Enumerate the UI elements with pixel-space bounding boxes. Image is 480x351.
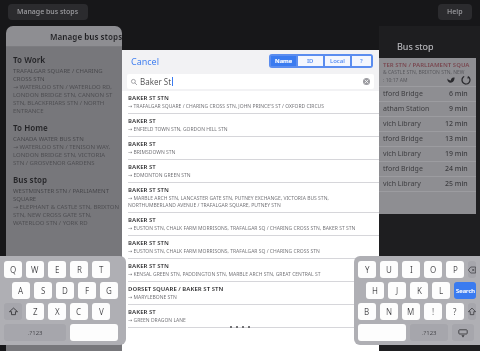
staticText: DORSET SQUARE / BAKER ST STN [128, 285, 224, 293]
button[interactable]: ? [446, 303, 464, 320]
button[interactable]: Baker St [127, 74, 374, 89]
button[interactable]: X [48, 303, 66, 320]
staticText: T [99, 264, 104, 275]
staticText: 12 min [445, 119, 468, 129]
staticText: TER STN / PARLIAMENT SQUA [383, 61, 470, 69]
button[interactable]: Q [4, 261, 22, 278]
button[interactable]: S [34, 282, 52, 299]
button[interactable]: U [380, 261, 398, 278]
button[interactable]: BAKER ST [122, 305, 379, 327]
button[interactable]: Clear text [363, 78, 370, 85]
button[interactable]: H [366, 282, 384, 299]
button[interactable]: V [92, 303, 110, 320]
staticText: BAKER ST STN [128, 262, 169, 270]
button[interactable]: ID [298, 56, 323, 66]
button[interactable]: tford Bridge [379, 132, 476, 146]
staticText: To Home [13, 122, 48, 133]
button[interactable]: Name [271, 56, 296, 66]
button[interactable]: BAKER ST [122, 213, 379, 235]
button[interactable]: .?123 [410, 324, 448, 341]
staticText: → TRAFALGAR SQUARE / CHARING CROSS STN, … [128, 103, 324, 110]
button[interactable]: vich Library [379, 117, 476, 131]
staticText: 19 min [445, 149, 468, 159]
button[interactable]: A [12, 282, 30, 299]
button[interactable]: P [446, 261, 464, 278]
button[interactable]: J [388, 282, 406, 299]
button[interactable]: tford Bridge [379, 87, 476, 101]
button[interactable]: Search [454, 282, 476, 299]
button[interactable]: Space [70, 324, 118, 341]
button[interactable]: Backspace [468, 261, 476, 278]
staticText: X [55, 306, 60, 317]
button[interactable]: .?123 [4, 324, 66, 341]
button[interactable]: Shift [4, 303, 22, 320]
staticText: Name [275, 57, 293, 65]
staticText: → EUSTON STN, CHALK FARM MORRISONS, TRAF… [128, 225, 356, 232]
button[interactable]: W [26, 261, 44, 278]
button[interactable]: BAKER ST [122, 137, 379, 159]
button[interactable]: L [432, 282, 450, 299]
staticText: Search [456, 287, 475, 295]
button[interactable]: ? [352, 56, 371, 66]
button[interactable]: tford Bridge [379, 162, 476, 176]
button[interactable]: M [402, 303, 420, 320]
button[interactable]: Space [358, 324, 406, 341]
staticText: I [410, 264, 413, 275]
button[interactable]: B [358, 303, 376, 320]
staticText: F [85, 285, 90, 296]
staticText: BAKER ST STN [128, 94, 169, 102]
staticText: P [453, 264, 458, 275]
button[interactable]: R [70, 261, 88, 278]
staticText: → WATERLOO STN / WATERLOO RD, LONDON BRI… [13, 83, 120, 115]
button[interactable]: Y [358, 261, 376, 278]
button[interactable]: BAKER ST STN [122, 91, 379, 113]
staticText: ! [432, 306, 435, 317]
button[interactable]: Manage bus stops [8, 4, 88, 20]
button[interactable]: T [92, 261, 110, 278]
staticText: ID [307, 57, 314, 65]
button[interactable]: Shift [468, 303, 476, 320]
button[interactable]: ! [424, 303, 442, 320]
staticText: BAKER ST STN [128, 239, 169, 247]
staticText: Q [10, 264, 17, 275]
button[interactable]: Help [438, 4, 472, 20]
staticText: → BRIMSDOWN STN [128, 149, 176, 156]
button[interactable]: Local [325, 56, 350, 66]
button[interactable]: D [56, 282, 74, 299]
button[interactable]: BAKER ST [122, 114, 379, 136]
button[interactable]: BAKER ST [122, 160, 379, 182]
staticText: → ELEPHANT & CASTLE STN, BRIXTON STN, NE… [13, 203, 120, 227]
button[interactable]: F [78, 282, 96, 299]
staticText: Local [330, 57, 345, 65]
staticText: To Work [13, 54, 46, 65]
staticText: B [364, 306, 370, 317]
button[interactable]: C [70, 303, 88, 320]
staticText: Bus stop [13, 174, 48, 185]
staticText: ? [453, 306, 457, 317]
button[interactable]: O [424, 261, 442, 278]
staticText: vich Library [383, 149, 421, 159]
button[interactable]: Cancel [128, 52, 163, 70]
staticText: tford Bridge [383, 134, 423, 144]
button[interactable]: K [410, 282, 428, 299]
button[interactable]: I [402, 261, 420, 278]
button[interactable]: BAKER ST STN [122, 236, 379, 258]
staticText: S [41, 285, 46, 296]
button[interactable]: N [380, 303, 398, 320]
staticText: 25 min [445, 179, 468, 189]
button[interactable]: BAKER ST STN [122, 259, 379, 281]
staticText: W [31, 264, 39, 275]
button[interactable]: Hide keyboard [452, 324, 474, 341]
button[interactable]: Z [26, 303, 44, 320]
button[interactable]: vich Library [379, 147, 476, 161]
staticText: BAKER ST [128, 163, 156, 171]
button[interactable]: DORSET SQUARE / BAKER ST STN [122, 282, 379, 304]
button[interactable]: atham Station [379, 102, 476, 116]
staticText: ? [360, 57, 363, 65]
button[interactable]: E [48, 261, 66, 278]
button[interactable]: BAKER ST STN [122, 183, 379, 212]
staticText: 9 min [449, 104, 468, 114]
staticText: 13 min [445, 134, 468, 144]
button[interactable]: G [100, 282, 118, 299]
button[interactable]: vich Library [379, 177, 476, 191]
